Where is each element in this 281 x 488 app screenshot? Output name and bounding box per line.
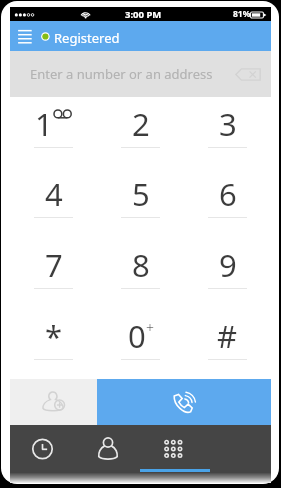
button[interactable]: *	[10, 308, 97, 379]
staticText: 1	[35, 103, 53, 145]
staticText: Enter a number or an address	[30, 65, 213, 83]
button[interactable]: 6	[184, 167, 271, 237]
button[interactable]: 8	[97, 237, 184, 308]
button[interactable]: 3	[184, 97, 271, 167]
button[interactable]: Add contact	[10, 379, 97, 425]
button[interactable]: 7	[10, 237, 97, 308]
button[interactable]: #	[184, 308, 271, 379]
button[interactable]: 4	[10, 167, 97, 237]
button[interactable]: Contacts	[75, 425, 140, 472]
button[interactable]: 9	[184, 237, 271, 308]
button[interactable]: 0	[97, 308, 184, 379]
staticText: 2	[132, 103, 150, 145]
staticText: 0	[128, 315, 146, 357]
staticText: Registered	[54, 29, 120, 47]
staticText: 7	[45, 244, 63, 286]
staticText: 3:00 PM	[125, 8, 162, 21]
button[interactable]: 2	[97, 97, 184, 167]
button[interactable]: Recents	[10, 425, 75, 472]
staticText: 81%	[233, 8, 251, 20]
staticText: *	[45, 315, 63, 357]
staticText: 6	[219, 173, 237, 215]
button[interactable]: Backspace	[232, 61, 264, 87]
button[interactable]: Call	[97, 379, 271, 425]
staticText: 4	[45, 173, 63, 215]
button[interactable]: 1	[10, 97, 97, 167]
button[interactable]: Keypad	[140, 425, 210, 472]
staticText: +	[146, 318, 154, 337]
staticText: 5	[132, 173, 150, 215]
staticText: 3	[219, 103, 237, 145]
staticText: 9	[219, 244, 237, 286]
staticText: #	[217, 315, 238, 357]
button[interactable]: Menu	[10, 21, 36, 51]
staticText: 8	[132, 244, 150, 286]
button[interactable]: 5	[97, 167, 184, 237]
